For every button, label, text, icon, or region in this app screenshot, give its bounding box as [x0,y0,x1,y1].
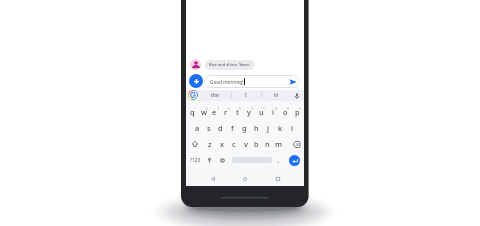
button[interactable]: b [251,136,262,152]
button[interactable]: Recent apps [272,173,284,185]
staticText: 2 [206,107,208,111]
button[interactable]: w [198,104,209,120]
button[interactable]: h [250,120,262,136]
staticText: g [242,123,247,133]
staticText: m [275,139,282,149]
button[interactable]: I [231,90,261,101]
staticText: d [218,123,223,133]
button[interactable]: m [273,136,284,152]
staticText: q [190,107,195,117]
staticText: the [211,92,219,99]
staticText: 7 [263,107,265,111]
staticText: w [201,107,207,117]
staticText: t [236,107,239,117]
staticText: . [277,155,280,165]
staticText: c [232,139,236,149]
staticText: r [224,107,228,117]
staticText: a [195,123,200,133]
staticText: ?123 [190,157,201,164]
staticText: f [231,123,234,133]
staticText: x [220,139,225,149]
staticText: n [265,139,270,149]
button[interactable]: n [262,136,273,152]
button[interactable]: r [220,104,231,120]
button[interactable]: Shift [186,136,204,152]
button[interactable]: . [272,152,285,168]
button[interactable]: k [274,120,286,136]
button[interactable]: s [203,120,214,136]
button[interactable]: z [204,136,216,152]
button[interactable]: the [200,90,230,101]
button[interactable]: Send [287,76,298,87]
staticText: k [278,123,283,133]
button[interactable]: q [187,104,198,120]
button[interactable]: Comma [203,152,216,168]
button[interactable]: Rise and shine. Yawn. [205,60,255,70]
button[interactable]: Google search [188,90,198,100]
staticText: i [272,107,274,117]
staticText: y [247,107,251,117]
button[interactable]: Enter [289,155,300,166]
button[interactable]: x [216,136,228,152]
button[interactable]: Contact avatar [190,59,201,70]
staticText: j [267,123,269,133]
staticText: l [291,123,293,133]
staticText: 8 [275,107,277,111]
button[interactable]: hi [261,90,291,101]
staticText: o [283,107,288,117]
staticText: z [208,139,212,149]
button[interactable]: Home [239,173,251,185]
button[interactable]: y [243,104,255,120]
button[interactable]: Good morning! [204,75,300,88]
staticText: hi [274,92,279,99]
staticText: 0 [299,107,301,111]
button[interactable]: d [214,120,226,136]
staticText: I [245,92,247,99]
button[interactable]: g [238,120,250,136]
button[interactable]: e [209,104,220,120]
button[interactable]: c [228,136,240,152]
staticText: b [254,139,259,149]
button[interactable]: l [286,120,298,136]
staticText: 9 [287,107,289,111]
button[interactable]: Change language [216,152,228,168]
button[interactable]: Add attachment [189,74,203,88]
button[interactable]: t [231,104,243,120]
button[interactable]: j [262,120,274,136]
staticText: h [254,123,259,133]
button[interactable]: p [291,104,303,120]
staticText: p [295,107,300,117]
button[interactable]: ?123 [187,152,203,168]
button[interactable]: a [192,120,203,136]
staticText: 1 [195,107,197,111]
staticText: s [207,123,211,133]
button[interactable]: f [226,120,238,136]
staticText: v [244,139,248,149]
button[interactable]: o [279,104,291,120]
button[interactable]: v [240,136,251,152]
button[interactable]: u [255,104,267,120]
button[interactable]: Voice input [291,90,302,101]
button[interactable]: Back [207,173,219,185]
staticText: Good morning! [210,79,244,85]
staticText: u [259,107,264,117]
staticText: Rise and shine. Yawn. [209,62,251,68]
button[interactable]: Backspace [284,136,304,152]
staticText: 5 [239,107,241,111]
staticText: 4 [228,107,230,111]
staticText: e [212,107,217,117]
staticText: 3 [217,107,219,111]
staticText: 6 [251,107,253,111]
button[interactable]: i [267,104,279,120]
